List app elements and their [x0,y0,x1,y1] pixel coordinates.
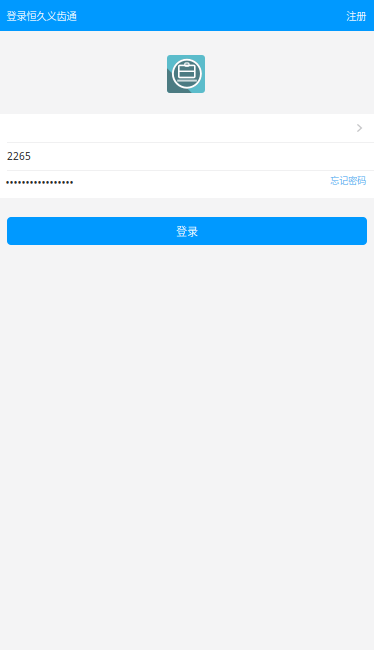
button[interactable]: 忘记密码 [316,166,366,194]
staticText: 2265 [7,149,31,163]
staticText: 登录恒久义齿通 [6,8,76,23]
button[interactable]: 注册 [334,0,366,31]
button[interactable]: 登录恒久义齿通 [0,0,374,31]
button[interactable]: 登录 [7,217,367,245]
staticText: ••••••••••••••••• [5,175,73,190]
staticText: 登录 [176,223,198,239]
staticText: 忘记密码 [330,173,366,187]
staticText: 注册 [346,8,366,23]
